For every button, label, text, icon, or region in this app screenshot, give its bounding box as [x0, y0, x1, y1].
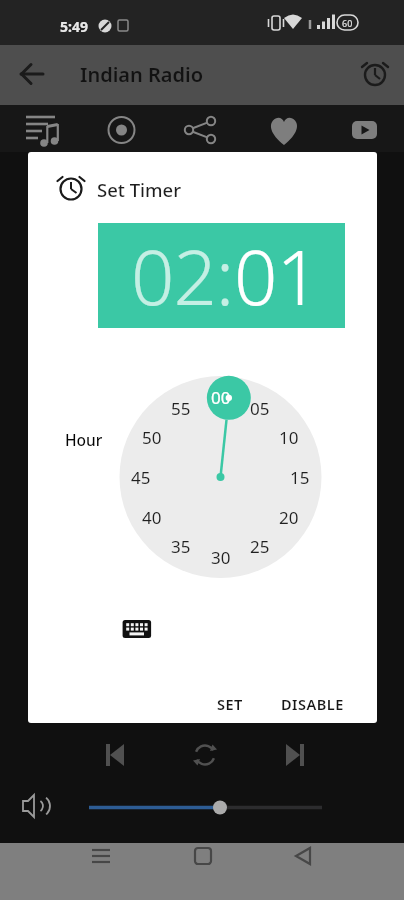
staticText: DISABLE	[281, 694, 344, 714]
staticText: Hour	[65, 429, 103, 450]
staticText: 50	[142, 426, 162, 448]
button[interactable]	[116, 612, 160, 646]
button[interactable]	[353, 53, 397, 97]
button[interactable]	[262, 108, 306, 152]
staticText: 25	[250, 535, 270, 557]
staticText: 5:49	[60, 17, 88, 36]
button[interactable]	[84, 793, 328, 823]
button[interactable]	[178, 108, 222, 152]
button[interactable]	[285, 843, 321, 873]
staticText: 01	[234, 224, 319, 328]
staticText: 45	[131, 466, 151, 488]
staticText: 10	[279, 426, 299, 448]
staticText: 35	[171, 535, 191, 557]
staticText: 00	[211, 386, 231, 408]
staticText: 55	[171, 397, 191, 419]
staticText: Indian Radio	[80, 61, 204, 88]
button[interactable]	[83, 843, 119, 873]
staticText: Set Timer	[97, 177, 182, 202]
button[interactable]: DISABLE	[262, 693, 362, 715]
button[interactable]	[187, 738, 223, 774]
staticText: 05	[250, 397, 270, 419]
staticText: 02:	[131, 224, 234, 328]
button[interactable]	[10, 52, 54, 96]
staticText: 20	[279, 506, 299, 528]
button[interactable]	[277, 738, 313, 774]
button[interactable]	[0, 45, 404, 105]
button[interactable]: 02:	[98, 223, 345, 328]
button[interactable]	[99, 108, 143, 152]
button[interactable]: SET	[199, 693, 260, 715]
button[interactable]	[96, 738, 132, 774]
button[interactable]	[18, 108, 62, 152]
button[interactable]	[342, 108, 386, 152]
staticText: 30	[211, 546, 231, 568]
staticText: 40	[142, 506, 162, 528]
staticText: 60	[342, 17, 353, 29]
button[interactable]	[185, 843, 221, 873]
staticText: 15	[290, 466, 310, 488]
staticText: SET	[217, 694, 243, 714]
